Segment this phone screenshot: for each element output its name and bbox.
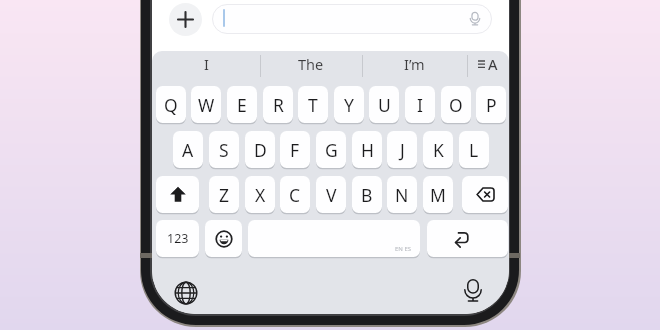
button[interactable] — [460, 278, 486, 304]
button[interactable] — [462, 176, 508, 213]
button[interactable]: S — [209, 131, 239, 168]
button[interactable]: E — [227, 86, 257, 123]
button[interactable]: C — [280, 176, 310, 213]
button[interactable] — [205, 220, 242, 257]
staticText: Z — [219, 183, 230, 207]
button[interactable]: Y — [334, 86, 364, 123]
staticText: F — [290, 138, 300, 162]
staticText: T — [308, 93, 318, 117]
button[interactable]: B — [352, 176, 382, 213]
staticText: A — [182, 138, 194, 162]
button[interactable] — [173, 280, 199, 306]
staticText: J — [400, 138, 405, 162]
button[interactable] — [212, 4, 492, 34]
button[interactable]: A — [173, 131, 203, 168]
button[interactable]: X — [245, 176, 275, 213]
button[interactable] — [169, 3, 202, 36]
staticText: I — [204, 54, 209, 74]
button[interactable]: R — [263, 86, 293, 123]
button[interactable]: L — [459, 131, 489, 168]
button[interactable]: D — [245, 131, 275, 168]
button[interactable]: I — [152, 50, 260, 78]
button[interactable] — [156, 176, 199, 213]
button[interactable]: M — [423, 176, 453, 213]
button[interactable]: Q — [156, 86, 186, 123]
staticText: X — [255, 183, 266, 207]
button[interactable]: Z — [209, 176, 239, 213]
button[interactable]: P — [476, 86, 506, 123]
button[interactable]: G — [316, 131, 346, 168]
button[interactable]: U — [369, 86, 399, 123]
button[interactable]: V — [316, 176, 346, 213]
button[interactable] — [427, 220, 508, 257]
button[interactable]: A — [467, 50, 508, 78]
button[interactable]: H — [352, 131, 382, 168]
staticText: N — [395, 183, 409, 207]
button[interactable]: I — [405, 86, 435, 123]
staticText: The — [298, 54, 324, 74]
button[interactable]: J — [387, 131, 417, 168]
staticText: G — [325, 138, 338, 162]
button[interactable]: I’m — [362, 50, 467, 78]
staticText: C — [289, 183, 301, 207]
staticText: Y — [344, 93, 354, 117]
button[interactable]: O — [441, 86, 471, 123]
staticText: 123 — [167, 230, 189, 247]
staticText: D — [254, 138, 267, 162]
staticText: B — [361, 183, 373, 207]
staticText: O — [449, 93, 463, 117]
staticText: E — [237, 93, 247, 117]
staticText: U — [378, 93, 391, 117]
staticText: S — [219, 138, 229, 162]
button[interactable]: K — [423, 131, 453, 168]
staticText: P — [486, 93, 497, 117]
staticText: K — [433, 138, 444, 162]
staticText: M — [430, 183, 446, 207]
staticText: L — [469, 138, 479, 162]
staticText: I’m — [404, 54, 425, 74]
staticText: W — [198, 93, 215, 117]
button[interactable]: F — [280, 131, 310, 168]
staticText: V — [326, 183, 337, 207]
staticText: A — [488, 54, 498, 74]
staticText: EN ES — [395, 245, 412, 253]
button[interactable]: EN ES — [248, 220, 420, 257]
staticText: Q — [164, 93, 178, 117]
staticText: R — [273, 93, 284, 117]
button[interactable]: T — [298, 86, 328, 123]
button[interactable]: N — [387, 176, 417, 213]
button[interactable]: 123 — [156, 220, 199, 257]
button[interactable]: The — [260, 50, 362, 78]
staticText: I — [417, 93, 423, 117]
staticText: H — [361, 138, 374, 162]
button[interactable]: W — [191, 86, 221, 123]
